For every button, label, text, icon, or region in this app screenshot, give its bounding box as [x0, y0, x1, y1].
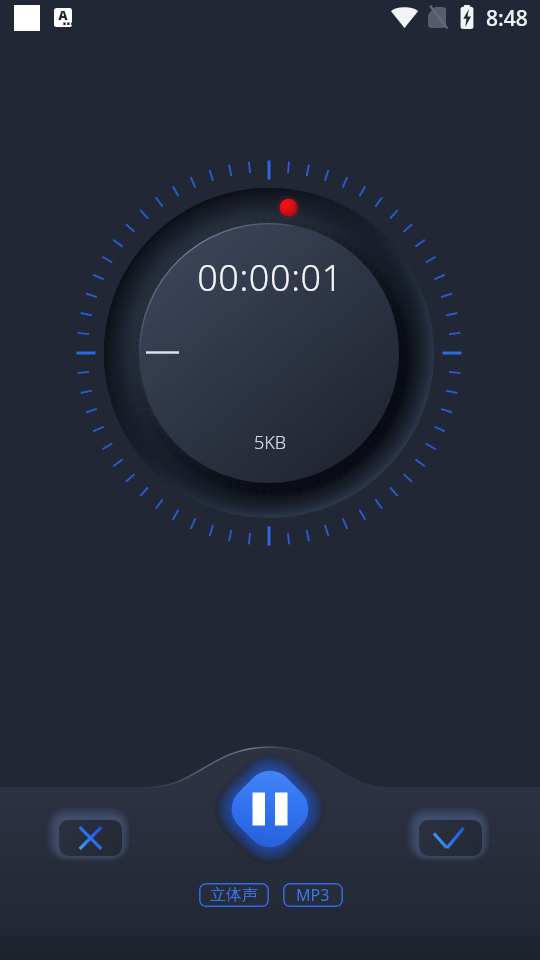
staticText: 8:48	[486, 4, 528, 33]
staticText: 立体声	[210, 885, 258, 905]
button[interactable]: Pause recording	[214, 753, 326, 865]
staticText: 5KB	[0, 430, 540, 455]
staticText: 00:00:01	[0, 253, 540, 302]
staticText: MP3	[296, 884, 330, 906]
staticText: A	[54, 8, 72, 24]
button[interactable]: Discard	[59, 820, 122, 856]
button[interactable]: Save	[419, 820, 482, 856]
button[interactable]: MP3	[283, 883, 343, 907]
button[interactable]: 立体声	[199, 883, 269, 907]
